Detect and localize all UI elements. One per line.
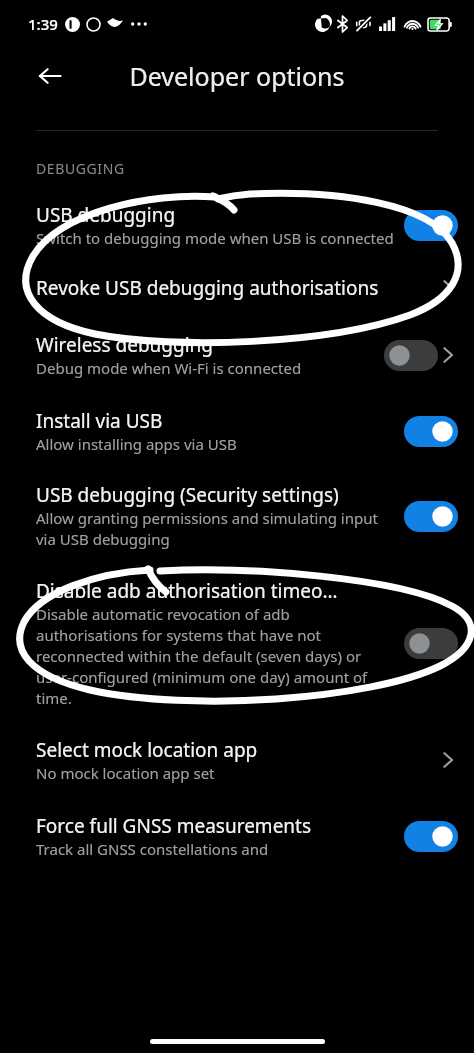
button[interactable]: Force full GNSS measurements: [0, 813, 474, 859]
staticText: No mock location app set: [36, 763, 215, 783]
staticText: USB debugging (Security settings): [36, 482, 339, 508]
staticText: DEBUGGING: [36, 159, 125, 178]
button[interactable]: Disable adb authorisation timeo…: [0, 578, 474, 709]
button[interactable]: USB debugging: [0, 202, 474, 248]
staticText: Debug mode when Wi-Fi is connected: [36, 358, 302, 378]
button[interactable]: Select mock location app: [0, 737, 474, 783]
staticText: Disable adb authorisation timeo…: [36, 578, 338, 604]
staticText: 1:39: [28, 14, 58, 34]
button[interactable]: USB debugging (Security settings): [0, 482, 474, 550]
button[interactable]: Revoke USB debugging authorisations: [0, 274, 474, 302]
staticText: Disable automatic revocation of adb auth…: [36, 604, 394, 709]
staticText: Track all GNSS constellations and: [36, 839, 269, 859]
staticText: Switch to debugging mode when USB is con…: [36, 228, 394, 248]
staticText: Allow installing apps via USB: [36, 434, 237, 454]
staticText: Revoke USB debugging authorisations: [36, 275, 379, 301]
staticText: Force full GNSS measurements: [36, 813, 312, 839]
button[interactable]: Wireless debugging: [0, 332, 474, 378]
staticText: Select mock location app: [36, 737, 258, 763]
staticText: Wireless debugging: [36, 332, 214, 358]
staticText: Allow granting permissions and simulatin…: [36, 508, 394, 550]
staticText: Install via USB: [36, 408, 163, 434]
staticText: Developer options: [129, 59, 345, 93]
button[interactable]: Back: [30, 56, 70, 96]
staticText: USB debugging: [36, 202, 176, 228]
button[interactable]: Install via USB: [0, 408, 474, 454]
